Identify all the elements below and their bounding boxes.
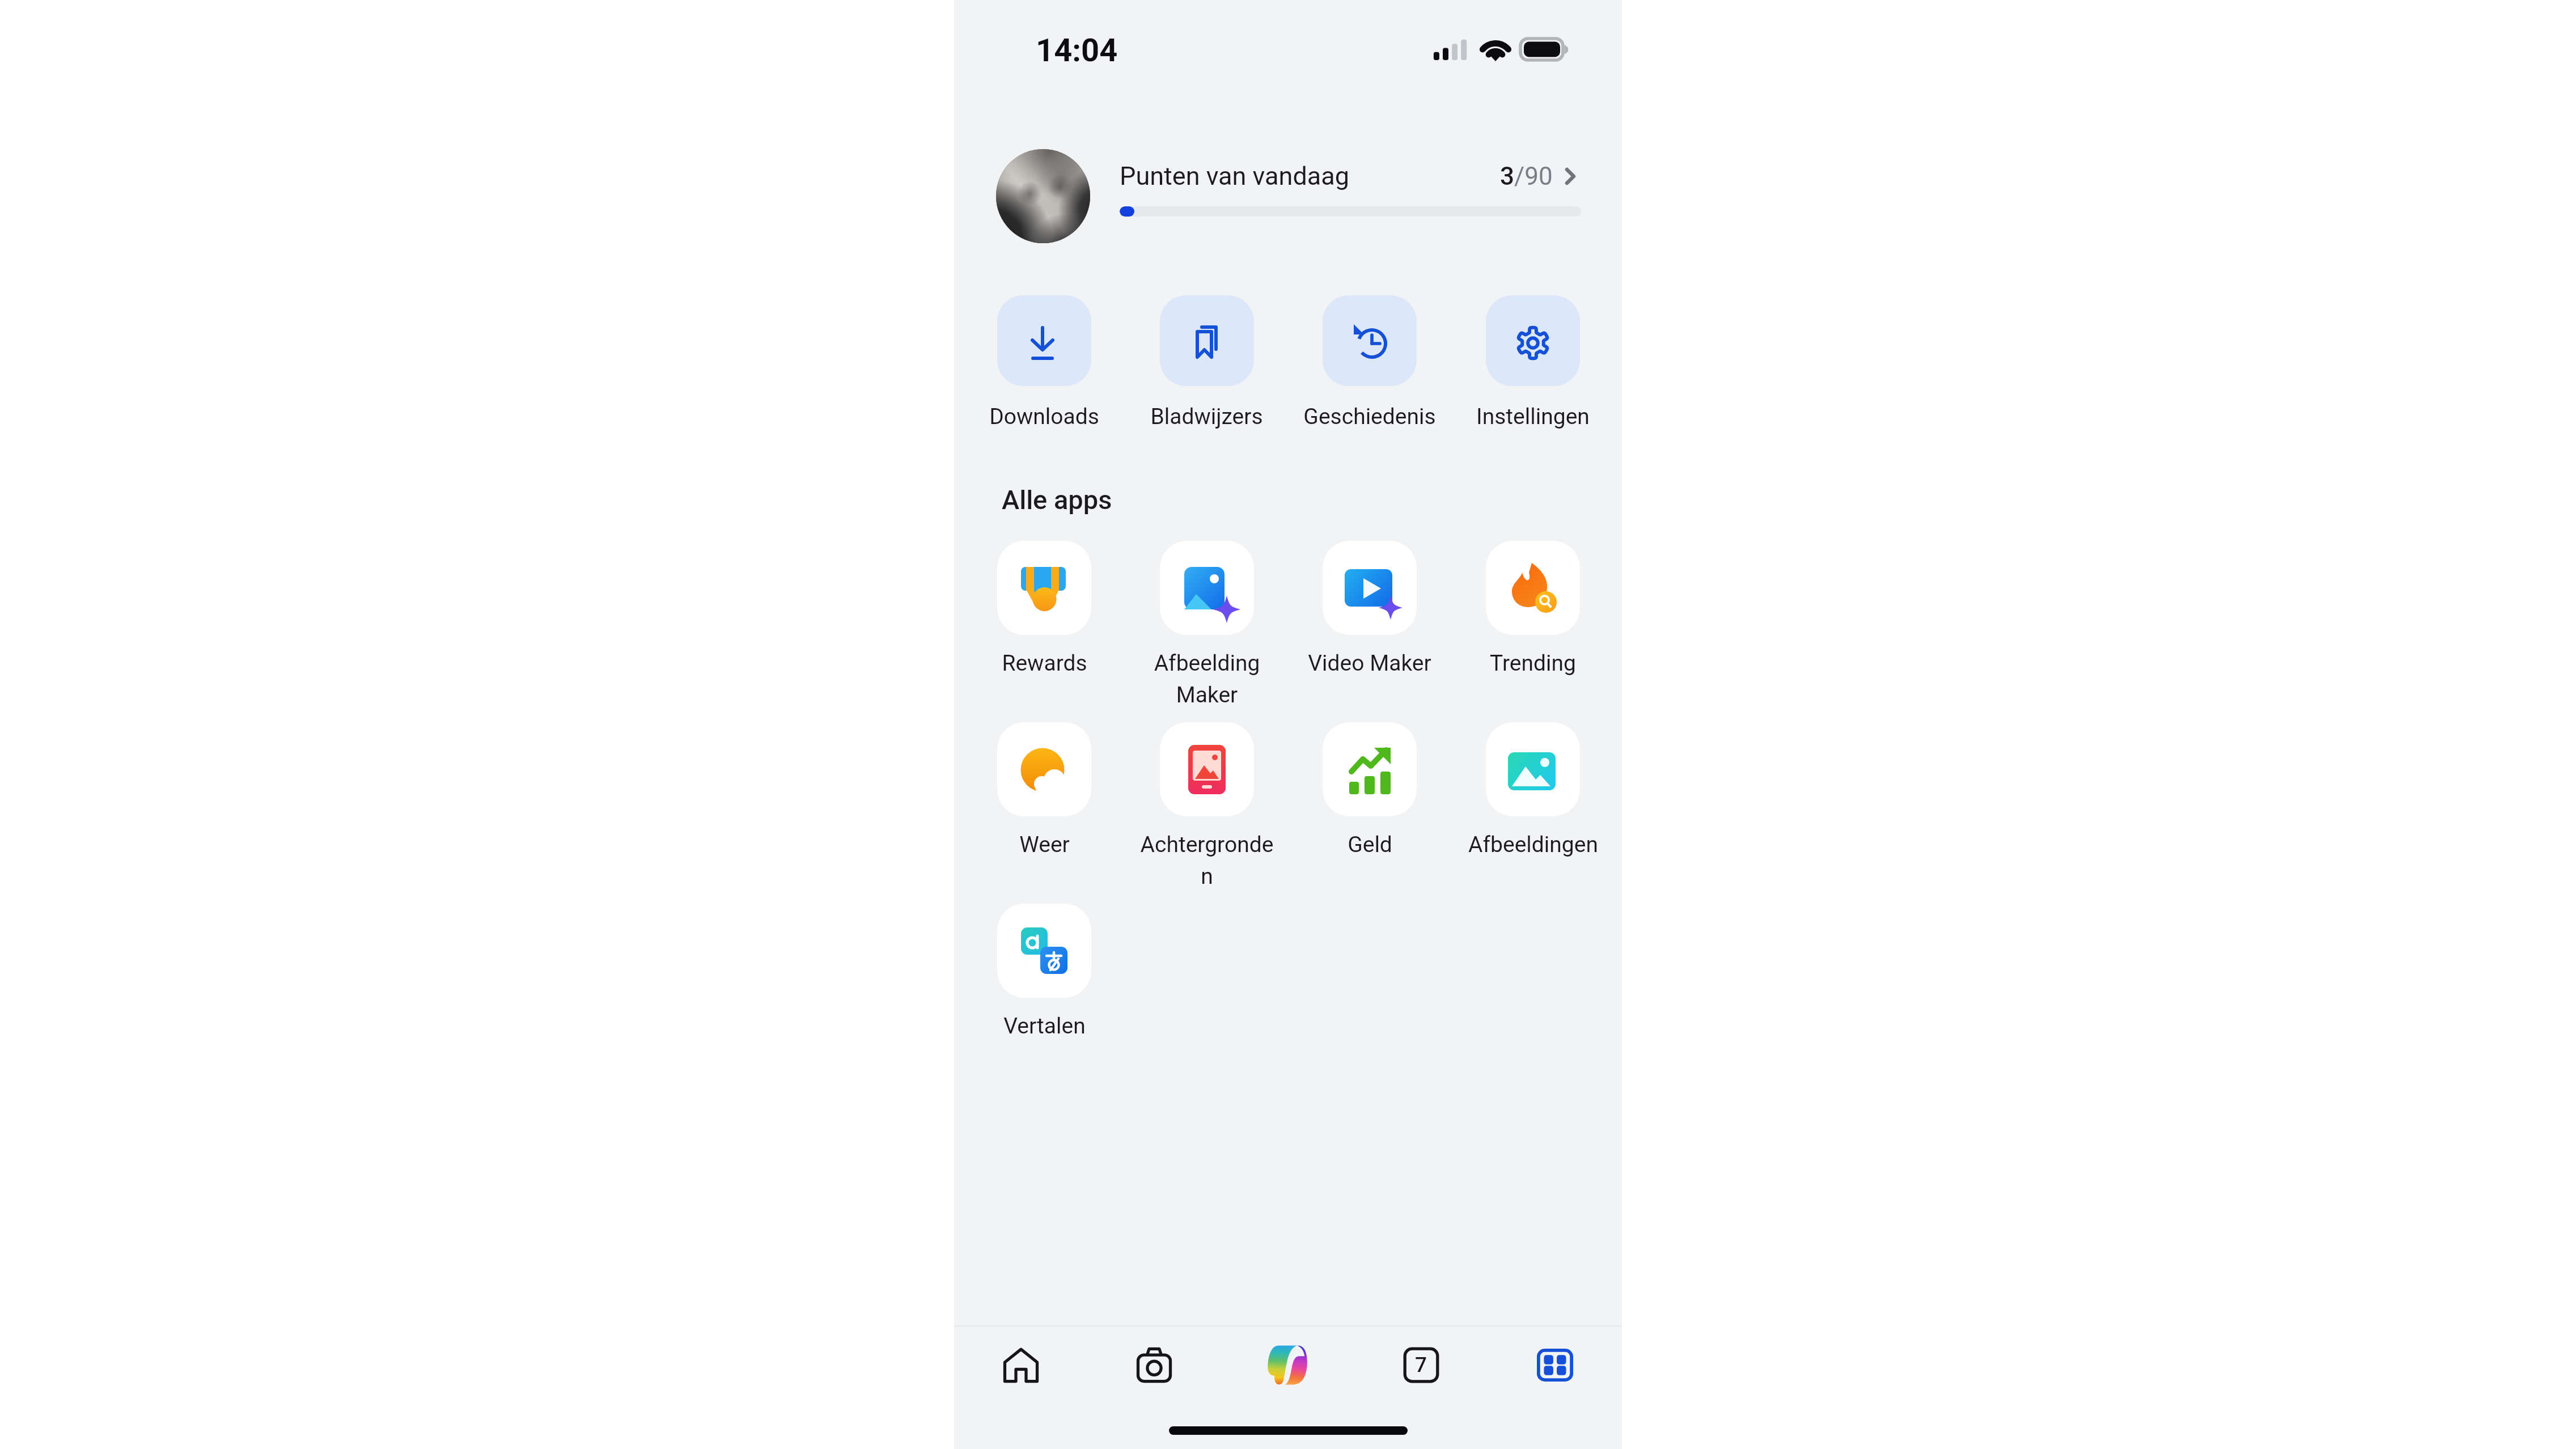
staticText: Rewards xyxy=(1002,650,1087,676)
staticText: Afbeelding Maker xyxy=(1139,650,1275,708)
staticText: Punten van vandaag xyxy=(1120,161,1349,191)
button[interactable]: Afbeeldingen xyxy=(1451,722,1615,858)
button[interactable]: Afbeelding Maker xyxy=(1125,541,1288,708)
staticText: Alle apps xyxy=(1002,484,1112,515)
staticText: Afbeeldingen xyxy=(1468,832,1598,858)
button[interactable]: Achtergronden xyxy=(1125,722,1288,889)
button[interactable]: Geld xyxy=(1288,722,1451,858)
staticText: Downloads xyxy=(989,404,1099,430)
button[interactable]: Punten van vandaag xyxy=(996,149,1581,243)
button[interactable]: Tabs xyxy=(1354,1327,1488,1404)
staticText: 7 xyxy=(1415,1353,1427,1377)
button[interactable]: Video Maker xyxy=(1288,541,1451,676)
staticText: Geschiedenis xyxy=(1303,404,1436,430)
staticText: Video Maker xyxy=(1308,650,1431,676)
button[interactable]: Copilot xyxy=(1221,1327,1354,1404)
button[interactable]: Vertalen xyxy=(963,904,1125,1039)
staticText: 3/90 xyxy=(1500,162,1553,191)
button[interactable]: All apps xyxy=(1488,1327,1622,1404)
button[interactable]: Rewards xyxy=(963,541,1125,676)
button[interactable]: Trending xyxy=(1451,541,1615,676)
button[interactable]: Home xyxy=(954,1327,1087,1404)
staticText: Trending xyxy=(1490,650,1576,676)
staticText: Vertalen xyxy=(1003,1013,1086,1039)
button[interactable]: Bladwijzers xyxy=(1125,295,1288,430)
staticText: 14:04 xyxy=(1036,32,1118,69)
staticText: Weer xyxy=(1019,832,1070,858)
button[interactable]: Camera xyxy=(1087,1327,1221,1404)
button[interactable]: Instellingen xyxy=(1451,295,1615,430)
staticText: Achtergronden xyxy=(1139,832,1275,889)
button[interactable]: Weer xyxy=(963,722,1125,858)
button[interactable]: Geschiedenis xyxy=(1288,295,1451,430)
button[interactable]: Downloads xyxy=(963,295,1125,430)
staticText: Instellingen xyxy=(1476,404,1590,430)
staticText: Geld xyxy=(1348,832,1392,858)
staticText: Bladwijzers xyxy=(1150,404,1263,430)
